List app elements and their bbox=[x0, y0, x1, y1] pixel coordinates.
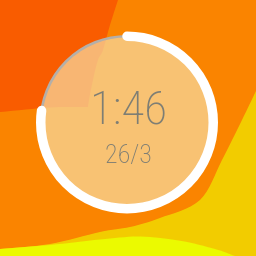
staticText: 26/3 bbox=[105, 139, 152, 169]
button[interactable]: Watch face bbox=[0, 0, 256, 256]
staticText: 1:46 bbox=[90, 80, 167, 135]
